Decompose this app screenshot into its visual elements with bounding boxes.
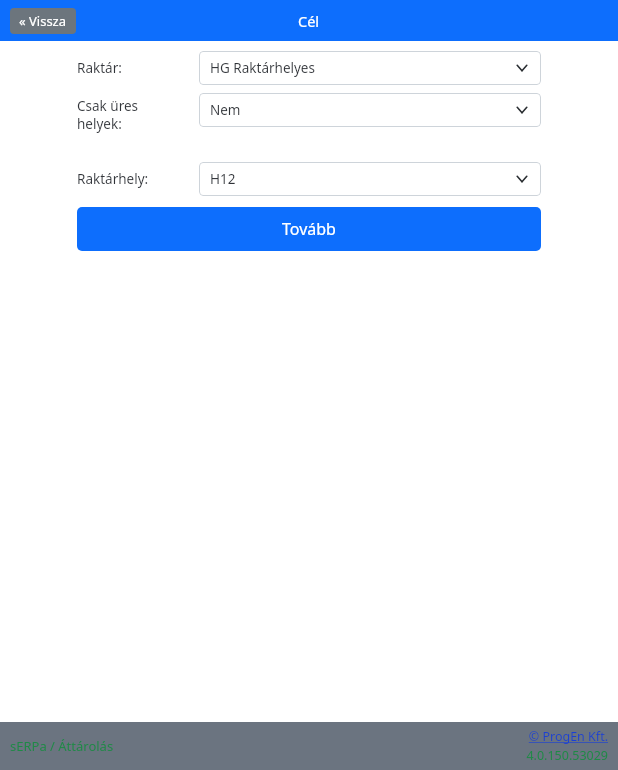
button[interactable]: © ProgEn Kft. xyxy=(528,728,608,745)
staticText: Csak üres xyxy=(77,97,139,115)
staticText: Nem xyxy=(210,101,241,119)
button[interactable]: Tovább xyxy=(77,207,541,251)
staticText: HG Raktárhelyes xyxy=(210,59,315,77)
staticText: « Vissza xyxy=(19,12,67,30)
staticText: Raktárhely: xyxy=(77,170,149,188)
button[interactable]: « Vissza xyxy=(10,8,76,34)
staticText: Tovább xyxy=(282,218,336,240)
other: Open dropdown xyxy=(514,102,530,118)
other: Open dropdown xyxy=(514,60,530,76)
staticText: helyek: xyxy=(77,115,122,133)
staticText: H12 xyxy=(210,170,236,188)
button[interactable]: Nem xyxy=(199,93,541,127)
staticText: Cél xyxy=(298,11,320,31)
staticText: Raktár: xyxy=(77,59,122,77)
button[interactable]: H12 xyxy=(199,162,541,196)
staticText: 4.0.150.53029 xyxy=(526,747,608,764)
button[interactable]: HG Raktárhelyes xyxy=(199,51,541,85)
staticText: sERPa / Áttárolás xyxy=(10,737,114,755)
other: Open dropdown xyxy=(514,171,530,187)
staticText: © ProgEn Kft. xyxy=(528,728,608,745)
